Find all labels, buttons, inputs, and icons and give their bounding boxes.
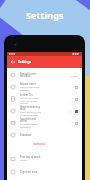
button[interactable]: Second hand effect	[7, 117, 82, 129]
staticText: First day of week	[20, 155, 41, 159]
staticText: Sunday	[20, 159, 28, 162]
staticText: Show remaining time	[20, 105, 42, 111]
staticText: Screen On	[20, 93, 33, 97]
staticText: Smoother moving hand effect	[20, 123, 42, 129]
button[interactable]: Show remaining time	[7, 105, 82, 117]
button[interactable]: First day of week	[7, 152, 82, 165]
staticText: Settings	[18, 60, 32, 64]
staticText: Second hand effect	[20, 117, 42, 123]
button[interactable]: Screen On	[7, 93, 82, 105]
staticText: Repeat timer	[20, 82, 36, 86]
staticText: Default timer duration	[20, 72, 42, 78]
button[interactable]: Back	[7, 56, 18, 68]
button[interactable]: Database	[7, 129, 82, 140]
staticText: Settings	[26, 9, 64, 21]
staticText: Day start time	[20, 170, 38, 174]
staticText: statistics	[33, 142, 46, 146]
staticText: Turn on the screen while the timer is ru…	[20, 97, 42, 105]
staticText: 4:00m	[71, 74, 78, 77]
staticText: Restart timer when complete	[20, 86, 42, 92]
staticText: Show remaining time on the notification	[20, 111, 42, 117]
button[interactable]: Default timer duration	[7, 69, 82, 81]
button[interactable]: Repeat timer	[7, 81, 82, 93]
button[interactable]: Day start time	[7, 165, 82, 178]
staticText: Database	[20, 133, 32, 137]
